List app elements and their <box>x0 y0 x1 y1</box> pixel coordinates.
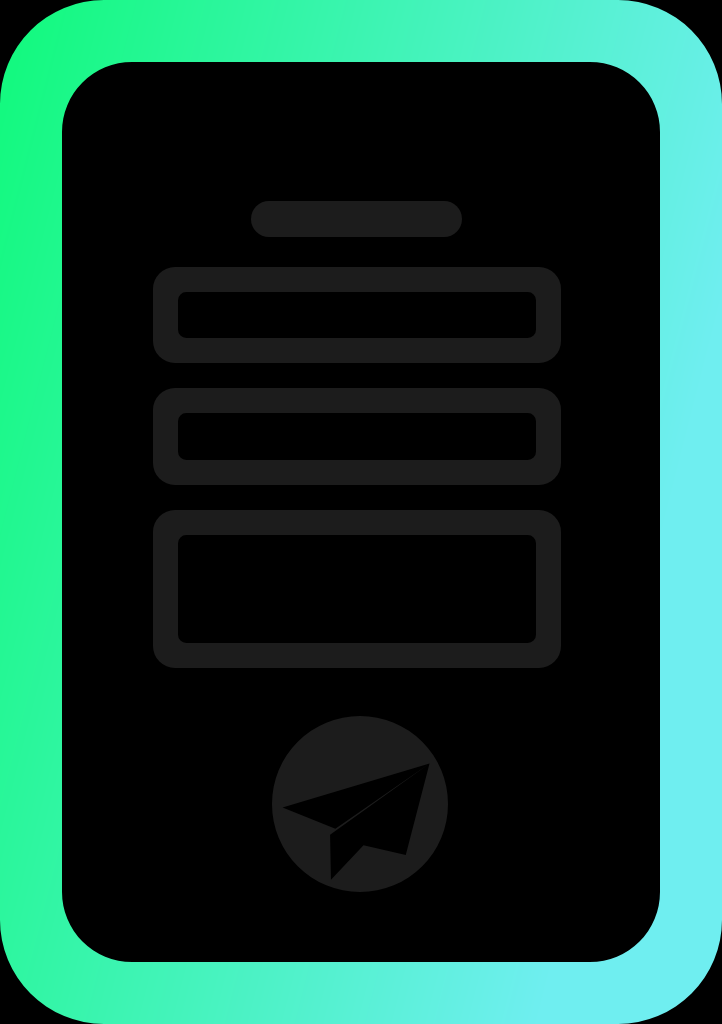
button[interactable]: Send <box>0 0 722 1024</box>
